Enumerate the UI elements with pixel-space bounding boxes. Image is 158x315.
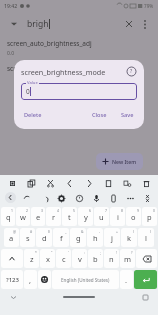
- button[interactable]: Delete: [21, 109, 45, 121]
- staticText: screen_auto_brightness_adj: [7, 39, 92, 48]
- button[interactable]: Undo: [21, 192, 33, 204]
- button[interactable]: Save: [118, 109, 137, 121]
- button[interactable]: i: [110, 207, 125, 226]
- button[interactable]: Cut: [44, 177, 56, 189]
- button[interactable]: m: [120, 249, 135, 268]
- button[interactable]: Emoji: [38, 270, 51, 289]
- button[interactable]: [21, 83, 137, 100]
- button[interactable]: Settings: [55, 192, 67, 204]
- button[interactable]: b: [88, 249, 103, 268]
- staticText: 0: [153, 208, 155, 213]
- staticText: !: [116, 250, 117, 255]
- button[interactable]: z: [24, 249, 39, 268]
- staticText: @: [13, 229, 17, 234]
- staticText: ?123: [6, 276, 19, 284]
- staticText: New Item: [112, 158, 137, 165]
- button[interactable]: Select all: [6, 177, 18, 189]
- button[interactable]: Backspace: [136, 249, 157, 268]
- button[interactable]: Period: [120, 270, 133, 289]
- staticText: w: [20, 212, 26, 222]
- button[interactable]: Redo: [38, 192, 50, 204]
- staticText: m: [124, 254, 132, 264]
- staticText: r: [52, 212, 56, 222]
- button[interactable]: Back: [5, 192, 16, 203]
- button[interactable]: ?123: [1, 270, 23, 289]
- button[interactable]: h: [87, 228, 103, 247]
- staticText: English (United States): [61, 277, 110, 283]
- staticText: &: [81, 229, 84, 234]
- button[interactable]: More: [124, 192, 136, 204]
- staticText: 7: [105, 208, 107, 213]
- button[interactable]: Copy: [25, 177, 37, 189]
- button[interactable]: l: [138, 228, 154, 247]
- button[interactable]: w: [16, 207, 30, 226]
- staticText: p: [147, 212, 152, 222]
- button[interactable]: Resize: [141, 192, 153, 204]
- button[interactable]: Keyboard switcher: [140, 292, 150, 302]
- button[interactable]: y: [78, 207, 93, 226]
- button[interactable]: Clear: [122, 17, 136, 31]
- button[interactable]: Translate: [121, 177, 133, 189]
- staticText: 1: [11, 208, 13, 213]
- button[interactable]: u: [94, 207, 109, 226]
- button[interactable]: New Item: [96, 153, 143, 170]
- button[interactable]: r: [46, 207, 61, 226]
- button[interactable]: d: [36, 228, 52, 247]
- button[interactable]: Clipboard: [107, 192, 119, 204]
- staticText: v: [78, 254, 82, 264]
- button[interactable]: Shift: [1, 249, 23, 268]
- button[interactable]: p: [142, 207, 157, 226]
- staticText: t: [68, 212, 71, 222]
- staticText: d: [42, 233, 47, 243]
- staticText: (: [133, 229, 135, 234]
- staticText: ,: [29, 275, 32, 285]
- staticText: g: [76, 233, 81, 243]
- staticText: screen_brightness_mode: [21, 67, 106, 77]
- button[interactable]: t: [62, 207, 77, 226]
- staticText: Save: [121, 111, 134, 119]
- button[interactable]: Close: [89, 109, 110, 121]
- staticText: s: [26, 233, 30, 243]
- button[interactable]: Hide keyboard: [8, 292, 18, 302]
- button[interactable]: More options: [139, 18, 151, 30]
- button[interactable]: g: [70, 228, 86, 247]
- staticText: Close: [92, 111, 107, 119]
- button[interactable]: Paste: [102, 177, 114, 189]
- button[interactable]: Dropdown: [7, 17, 21, 31]
- button[interactable]: Help: [126, 66, 137, 77]
- button[interactable]: Voice input: [90, 192, 102, 204]
- button[interactable]: f: [53, 228, 69, 247]
- button[interactable]: Enter: [134, 270, 157, 289]
- staticText: i: [117, 212, 119, 222]
- button[interactable]: n: [104, 249, 119, 268]
- staticText: -: [99, 229, 101, 234]
- staticText: #: [30, 229, 33, 234]
- button[interactable]: j: [104, 228, 120, 247]
- staticText: 0: [26, 87, 30, 96]
- button[interactable]: Comma: [24, 270, 37, 289]
- button[interactable]: e: [31, 207, 45, 226]
- button[interactable]: a: [4, 228, 19, 247]
- button[interactable]: v: [72, 249, 87, 268]
- staticText: ): [150, 229, 152, 234]
- staticText: c: [62, 254, 66, 264]
- button[interactable]: Delete: [140, 177, 152, 189]
- button[interactable]: Move right: [83, 177, 95, 189]
- staticText: :: [84, 250, 85, 255]
- button[interactable]: s: [20, 228, 35, 247]
- button[interactable]: c: [56, 249, 71, 268]
- staticText: y: [84, 212, 88, 222]
- staticText: q: [6, 212, 11, 222]
- staticText: h: [93, 233, 98, 243]
- button[interactable]: o: [126, 207, 141, 226]
- button[interactable]: q: [1, 207, 15, 226]
- button[interactable]: k: [121, 228, 137, 247]
- button[interactable]: English (United States): [52, 270, 119, 289]
- button[interactable]: x: [40, 249, 55, 268]
- button[interactable]: Emoji: [73, 192, 85, 204]
- button[interactable]: Move left: [63, 177, 75, 189]
- staticText: ": [51, 250, 53, 255]
- staticText: Value: [27, 80, 38, 86]
- staticText: screen_brightness: [7, 64, 63, 73]
- staticText: 19:42: [4, 2, 18, 9]
